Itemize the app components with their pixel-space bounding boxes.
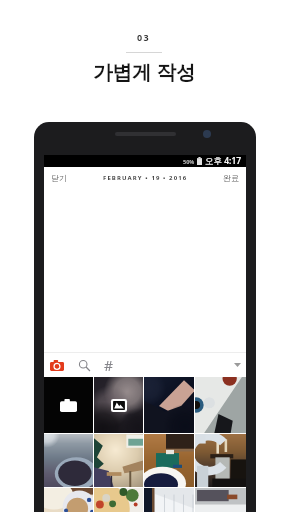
button[interactable]: 닫기 (44, 169, 74, 187)
staticText: 오후 4:17 (205, 155, 242, 167)
button[interactable]: Photo 4 (195, 377, 246, 433)
button[interactable]: Photo 1 (44, 377, 93, 433)
button[interactable]: Photo 12 (195, 488, 246, 512)
button[interactable]: Photo 10 (94, 488, 143, 512)
staticText: 가볍게 작성 (93, 58, 196, 85)
button[interactable]: Hashtag (102, 354, 116, 377)
staticText: FEBRUARY • 19 • 2016 (103, 174, 188, 182)
button[interactable]: Photo 5 (44, 434, 93, 487)
staticText: 50% (183, 158, 195, 165)
button[interactable]: 완료 (216, 169, 246, 187)
button[interactable]: Photo 11 (144, 488, 194, 512)
button[interactable]: Photo 7 (144, 434, 194, 487)
button[interactable]: Photo 6 (94, 434, 143, 487)
button[interactable]: Photo 9 (44, 488, 93, 512)
staticText: 닫기 (51, 173, 67, 183)
staticText: 03 (137, 31, 151, 43)
button[interactable]: Photo 3 (144, 377, 194, 433)
button[interactable]: Camera (48, 356, 66, 375)
button[interactable]: Photo 8 (195, 434, 246, 487)
button[interactable]: Search (76, 355, 93, 376)
button[interactable]: Expand (234, 363, 241, 367)
staticText: # (104, 356, 114, 375)
button[interactable]: Photo 2 (94, 377, 143, 433)
staticText: 완료 (223, 173, 239, 183)
